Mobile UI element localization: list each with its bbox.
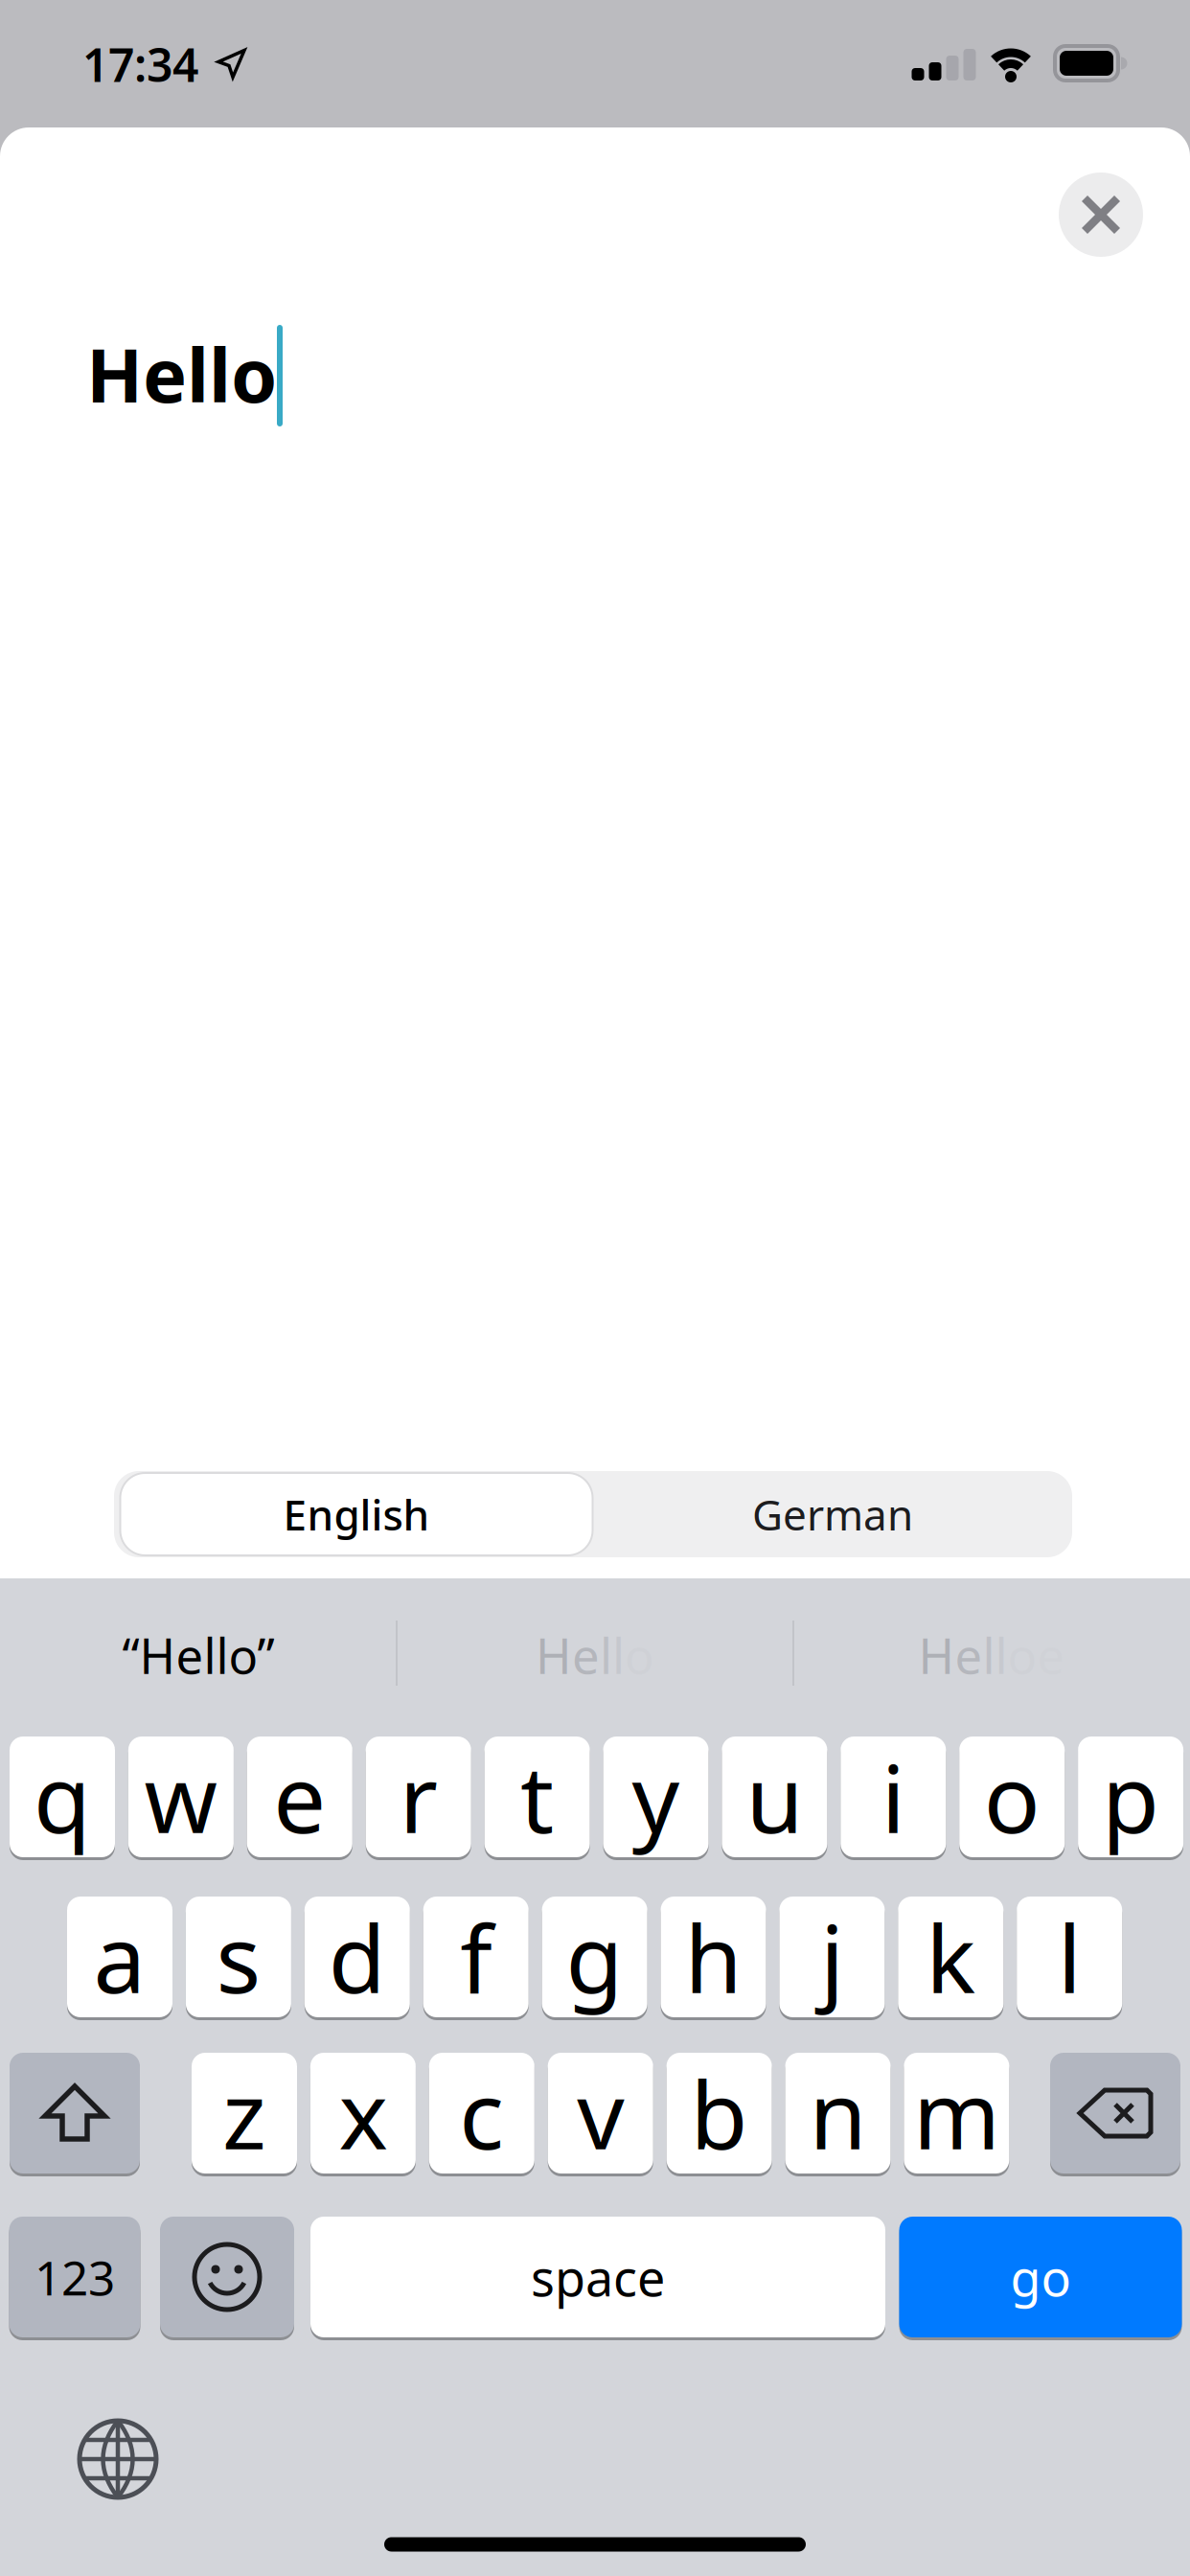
staticText: a [93,1895,146,2019]
staticText: q [34,1735,91,1859]
button[interactable]: H [800,1588,1183,1722]
button[interactable]: y [603,1735,709,1859]
button[interactable]: z [192,2051,297,2175]
button[interactable]: space [310,2215,885,2339]
staticText: b [690,2051,748,2175]
button[interactable]: Emoji [160,2215,294,2339]
button[interactable]: h [661,1895,766,2019]
staticText: o [984,1735,1040,1859]
button[interactable]: u [722,1735,827,1859]
staticText: k [926,1895,976,2019]
button[interactable]: c [429,2051,534,2175]
button[interactable]: l [1017,1895,1122,2019]
button[interactable]: p [1078,1735,1183,1859]
button[interactable]: t [484,1735,590,1859]
staticText: x [339,2051,387,2175]
staticText: l [612,1623,625,1687]
staticText: t [520,1735,554,1859]
staticText: German [752,1486,913,1542]
staticText: space [531,2244,665,2310]
button[interactable]: Shift [10,2051,140,2175]
button[interactable]: v [548,2051,653,2175]
button[interactable]: s [186,1895,291,2019]
staticText: e [572,1623,600,1687]
staticText: l [983,1623,995,1687]
button[interactable]: English [118,1471,595,1557]
staticText: v [577,2051,624,2175]
staticText: l [995,1623,1007,1687]
button[interactable]: r [366,1735,471,1859]
staticText: d [328,1895,386,2019]
staticText: l [1057,1895,1081,2019]
staticText: e [955,1623,983,1687]
button[interactable]: f [423,1895,529,2019]
staticText: g [566,1895,623,2019]
button[interactable]: i [841,1735,946,1859]
staticText: y [632,1735,680,1859]
staticText: m [913,2051,1000,2175]
button[interactable]: Close [1059,172,1143,257]
button[interactable]: k [898,1895,1003,2019]
button[interactable]: e [247,1735,352,1859]
button[interactable]: b [666,2051,772,2175]
button[interactable]: o [959,1735,1065,1859]
button[interactable]: a [67,1895,172,2019]
staticText: z [222,2051,266,2175]
staticText: h [685,1895,742,2019]
button[interactable]: go [899,2215,1182,2339]
button[interactable]: H [403,1588,787,1722]
staticText: u [746,1735,803,1859]
staticText: n [809,2051,867,2175]
button[interactable]: Next keyboard [76,2417,160,2501]
staticText: l [600,1623,612,1687]
staticText: f [460,1895,492,2019]
button[interactable]: n [785,2051,891,2175]
button[interactable]: w [128,1735,234,1859]
button[interactable]: m [904,2051,1009,2175]
button[interactable]: German [593,1471,1072,1557]
button[interactable]: Delete [1050,2051,1180,2175]
staticText: 17:34 [82,34,198,95]
button[interactable]: “Hello” [7,1588,390,1722]
staticText: j [820,1895,844,2019]
button[interactable]: j [779,1895,885,2019]
staticText: p [1102,1735,1159,1859]
button[interactable]: q [10,1735,115,1859]
staticText: “Hello” [122,1623,275,1687]
staticText: 123 [34,2246,115,2308]
staticText: w [144,1735,218,1859]
staticText: go [1010,2244,1071,2310]
button[interactable]: g [542,1895,647,2019]
staticText: c [459,2051,504,2175]
button[interactable]: 123 [9,2215,140,2339]
staticText: H [918,1623,955,1687]
button[interactable]: x [310,2051,416,2175]
button[interactable]: d [304,1895,410,2019]
staticText: s [216,1895,261,2019]
staticText: e [273,1735,326,1859]
staticText: H [536,1623,572,1687]
staticText: r [399,1735,438,1859]
staticText: English [283,1486,430,1542]
staticText: i [881,1735,905,1859]
staticText: Hello [86,325,277,423]
